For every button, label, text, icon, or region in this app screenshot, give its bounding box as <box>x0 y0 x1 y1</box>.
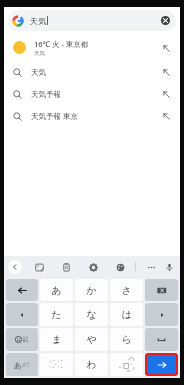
button[interactable]: Back <box>8 260 22 274</box>
button[interactable]: Insert suggestion <box>160 66 172 78</box>
staticText: 天気 <box>30 16 46 26</box>
button[interactable]: ま <box>40 328 73 351</box>
button[interactable]: Clipboard <box>59 260 73 274</box>
button[interactable]: Punctuation <box>110 353 143 376</box>
button[interactable]: わ <box>75 353 108 376</box>
staticText: 記 <box>23 336 29 343</box>
button[interactable]: あ <box>40 279 73 301</box>
button[interactable]: Voice input <box>162 260 176 274</box>
button[interactable]: Clear <box>160 15 171 26</box>
button[interactable]: や <box>75 328 108 351</box>
button[interactable]: Stickers <box>32 260 46 274</box>
button[interactable]: Emoticons <box>40 353 73 376</box>
staticText: 天気 <box>34 50 45 57</box>
staticText: わ <box>86 358 97 371</box>
button[interactable]: Theme <box>113 260 127 274</box>
button[interactable]: Insert suggestion <box>160 110 172 122</box>
button[interactable]: は <box>110 303 143 326</box>
staticText: a1 <box>22 360 30 370</box>
button[interactable]: Move cursor left <box>6 303 38 326</box>
staticText: さ <box>121 284 132 297</box>
staticText: 天気予報 東京 <box>31 111 160 121</box>
button[interactable]: 天気予報 東京 <box>4 105 180 127</box>
staticText: ら <box>121 333 132 346</box>
staticText: あ <box>14 361 22 370</box>
button[interactable]: な <box>75 303 108 326</box>
staticText: や <box>86 333 97 346</box>
button[interactable]: さ <box>110 279 143 301</box>
button[interactable]: Space <box>145 328 178 351</box>
staticText: は <box>121 308 132 321</box>
staticText: 16℃ 火 - 東京都 <box>34 39 89 49</box>
staticText: 天気 <box>31 68 160 77</box>
button[interactable]: Enter <box>147 355 176 374</box>
staticText: か <box>86 284 97 297</box>
button[interactable]: 天気予報 <box>4 83 180 105</box>
button[interactable]: 天気 <box>4 61 180 83</box>
staticText: 天気予報 <box>31 90 160 99</box>
button[interactable]: Switch input mode <box>6 353 38 376</box>
staticText: ま <box>51 333 62 346</box>
button[interactable]: 16℃ 火 - 東京都 <box>4 34 180 61</box>
button[interactable]: Insert suggestion <box>160 88 172 100</box>
staticText: な <box>86 308 97 321</box>
staticText: あ <box>51 284 62 297</box>
button[interactable]: Move cursor right <box>145 303 178 326</box>
button[interactable]: Emoji and symbols <box>6 328 38 351</box>
staticText: た <box>51 308 62 321</box>
button[interactable]: 天気 <box>8 10 176 31</box>
button[interactable]: More <box>144 260 158 274</box>
button[interactable]: Insert suggestion <box>160 42 172 54</box>
button[interactable]: ら <box>110 328 143 351</box>
button[interactable]: Settings <box>86 260 100 274</box>
button[interactable]: た <box>40 303 73 326</box>
button[interactable]: Undo <box>6 279 38 301</box>
button[interactable]: か <box>75 279 108 301</box>
button[interactable]: Delete <box>145 279 178 301</box>
